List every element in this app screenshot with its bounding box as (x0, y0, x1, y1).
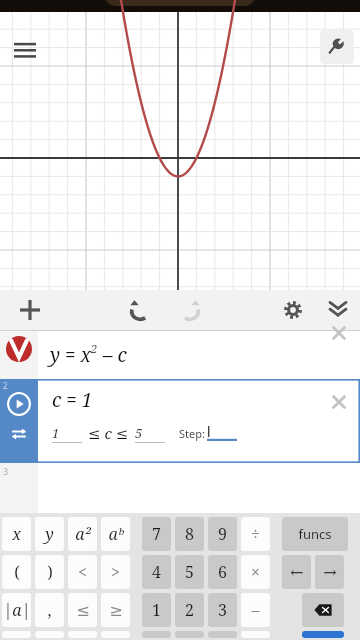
staticText: 1 (152, 599, 161, 621)
button[interactable]: 8 (175, 517, 204, 551)
button[interactable]: 3 (0, 463, 360, 513)
button[interactable]: 9 (208, 517, 237, 551)
button[interactable] (302, 593, 344, 627)
staticText: 3 (3, 465, 9, 477)
button[interactable]: Delete expression (328, 331, 350, 353)
button[interactable]: → (315, 555, 344, 589)
staticText: ( (14, 561, 20, 583)
button[interactable] (35, 631, 64, 638)
button[interactable]: Add expression (0, 290, 60, 330)
staticText: y (45, 523, 54, 545)
staticText: ÷ (251, 523, 260, 545)
staticText: 4 (152, 561, 161, 583)
staticText: 7 (152, 523, 161, 545)
staticText: x (12, 523, 21, 545)
button[interactable]: ≥ (101, 593, 130, 627)
button[interactable]: Collapse (316, 290, 360, 330)
button[interactable]: y (35, 517, 64, 551)
staticText: ) (47, 561, 53, 583)
button[interactable]: x (2, 517, 31, 551)
button[interactable]: 5 (175, 555, 204, 589)
button[interactable]: , (35, 593, 64, 627)
button[interactable] (241, 631, 270, 638)
staticText: c = 1 (52, 387, 93, 413)
button[interactable] (142, 631, 171, 638)
button[interactable]: |a| (2, 593, 31, 627)
staticText: |a| (3, 599, 31, 621)
staticText: Step: (179, 426, 205, 441)
button[interactable] (208, 631, 237, 638)
button[interactable]: funcs (282, 517, 348, 551)
button[interactable] (175, 631, 204, 638)
staticText: 5 (135, 424, 165, 442)
button[interactable]: Play slider (0, 379, 38, 463)
staticText: > (111, 561, 120, 583)
staticText: 2 (91, 341, 98, 356)
staticText: 8 (185, 523, 194, 545)
button[interactable]: 2 (175, 593, 204, 627)
button[interactable]: Graph settings (320, 30, 354, 64)
button[interactable]: Undo (115, 290, 165, 330)
button[interactable]: 4 (142, 555, 171, 589)
button[interactable]: ) (35, 555, 64, 589)
staticText: ≤ c ≤ (88, 423, 129, 443)
staticText: funcs (298, 525, 332, 543)
button[interactable] (302, 631, 344, 638)
button[interactable]: ( (2, 555, 31, 589)
button[interactable]: × (241, 555, 270, 589)
staticText: , (47, 599, 52, 621)
button[interactable]: 7 (142, 517, 171, 551)
button[interactable] (2, 631, 31, 638)
button[interactable] (68, 631, 97, 638)
button[interactable]: ← (282, 555, 311, 589)
staticText: – c (98, 342, 127, 368)
button[interactable]: Menu (8, 32, 42, 66)
staticText: ← (290, 563, 304, 582)
staticText: 1 (52, 424, 82, 442)
staticText: × (251, 561, 260, 583)
staticText: < (78, 561, 87, 583)
staticText: 3 (218, 599, 227, 621)
button[interactable]: ÷ (241, 517, 270, 551)
button[interactable]: Delete slider (328, 391, 350, 413)
staticText: 6 (218, 561, 227, 583)
staticText: 5 (185, 561, 194, 583)
button[interactable]: Redo (165, 290, 215, 330)
button[interactable]: aᵇ (101, 517, 130, 551)
button[interactable]: – (241, 593, 270, 627)
button[interactable]: 6 (208, 555, 237, 589)
staticText: → (323, 563, 337, 582)
button[interactable]: > (101, 555, 130, 589)
staticText: 9 (218, 523, 227, 545)
button[interactable]: Settings (270, 290, 316, 330)
button[interactable] (101, 631, 130, 638)
button[interactable]: ≤ (68, 593, 97, 627)
button[interactable]: 1 (142, 593, 171, 627)
button[interactable]: < (68, 555, 97, 589)
staticText: y = x (50, 342, 91, 368)
staticText: ≥ (109, 601, 123, 620)
staticText: a² (75, 523, 91, 545)
staticText: ≤ (76, 601, 90, 620)
staticText: 2 (185, 599, 194, 621)
staticText: aᵇ (108, 523, 124, 545)
button[interactable]: a² (68, 517, 97, 551)
button[interactable]: y = x (0, 331, 360, 379)
staticText: – (251, 599, 260, 621)
button[interactable]: 3 (208, 593, 237, 627)
button[interactable]: c = 1 (38, 379, 360, 463)
staticText: 2 (3, 380, 8, 391)
